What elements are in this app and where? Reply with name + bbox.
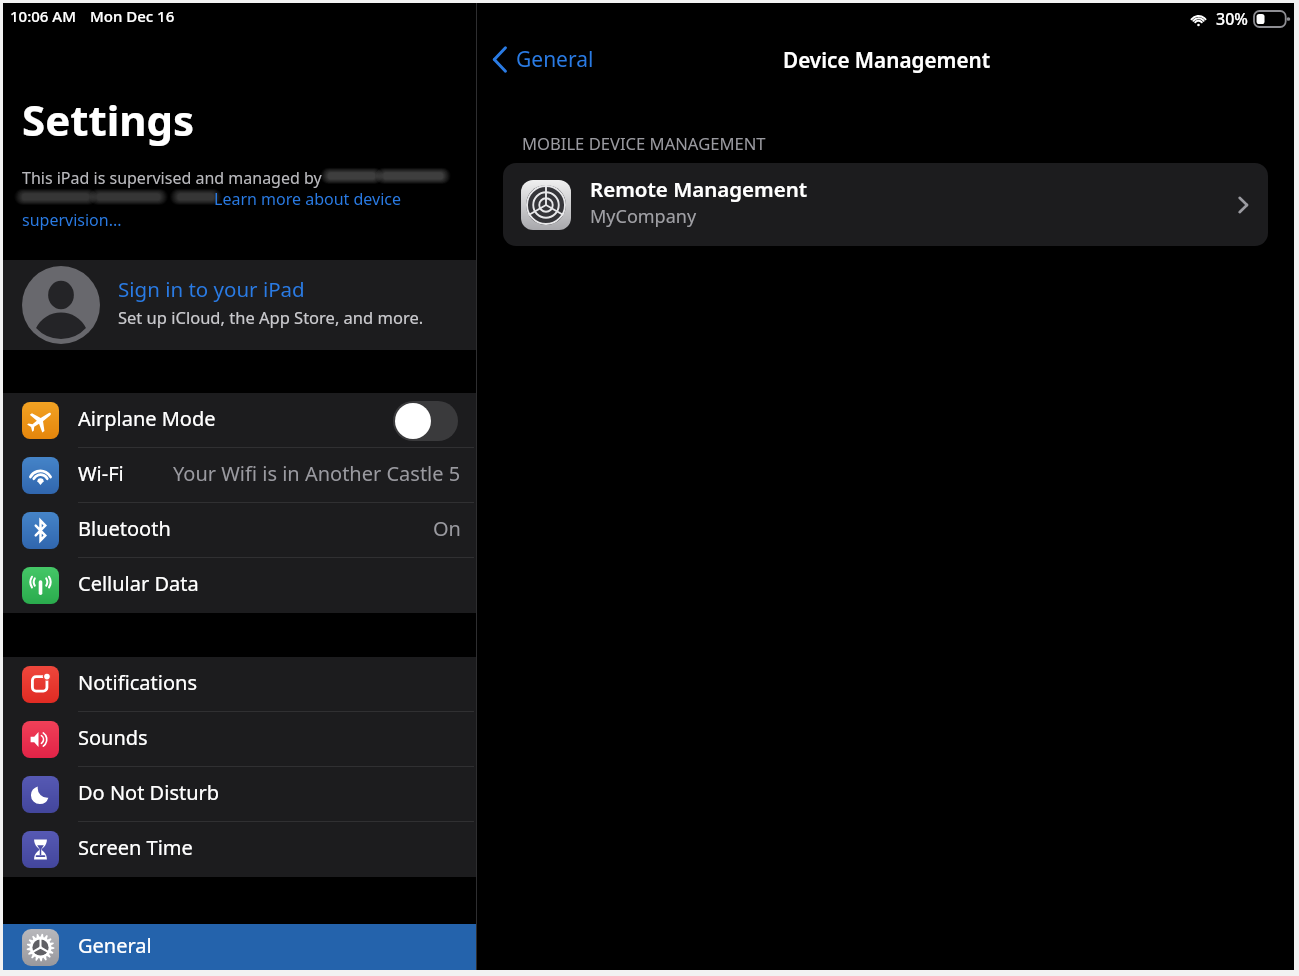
staticText: Cellular Data — [78, 570, 199, 597]
staticText: Do Not Disturb — [78, 779, 220, 806]
staticText: General — [516, 45, 594, 74]
button[interactable]: Back to General — [485, 44, 594, 75]
button[interactable]: Sign in to your iPad — [0, 260, 476, 350]
staticText: Learn more about device — [214, 188, 401, 210]
staticText: Set up iCloud, the App Store, and more. — [118, 306, 424, 328]
staticText: Settings — [22, 91, 195, 148]
staticText: Notifications — [78, 669, 197, 696]
button[interactable]: Airplane Mode — [0, 393, 476, 448]
staticText: MOBILE DEVICE MANAGEMENT — [522, 132, 766, 155]
staticText: Sounds — [78, 724, 148, 751]
staticText: Airplane Mode — [78, 405, 216, 432]
button[interactable]: Wi-Fi — [0, 448, 476, 503]
button[interactable]: Bluetooth — [0, 503, 476, 558]
staticText: Your Wifi is in Another Castle 5 — [173, 460, 461, 487]
button[interactable]: Notifications — [0, 657, 476, 712]
staticText: Wi-Fi — [78, 460, 124, 487]
staticText: 30% — [1216, 8, 1248, 30]
button[interactable]: Remote Management — [503, 163, 1268, 246]
staticText: On — [433, 515, 461, 542]
staticText: General — [78, 932, 152, 959]
staticText: Mon Dec 16 — [90, 6, 175, 26]
staticText: Remote Management — [590, 175, 808, 203]
button[interactable]: Airplane Mode off — [393, 401, 458, 441]
button[interactable]: Screen Time — [0, 822, 476, 877]
staticText: Bluetooth — [78, 515, 171, 542]
button[interactable]: Cellular Data — [0, 558, 476, 613]
staticText: supervision... — [22, 209, 122, 231]
button[interactable]: Sounds — [0, 712, 476, 767]
staticText: MyCompany — [590, 204, 697, 229]
other: Open Remote Management — [1233, 195, 1253, 215]
staticText: Device Management — [783, 46, 991, 74]
staticText: 10:06 AM — [10, 6, 76, 26]
button[interactable]: Do Not Disturb — [0, 767, 476, 822]
button[interactable]: General — [0, 924, 476, 971]
staticText: Screen Time — [78, 834, 193, 861]
staticText: This iPad is supervised and managed by — [22, 167, 322, 189]
staticText: Sign in to your iPad — [118, 275, 305, 303]
